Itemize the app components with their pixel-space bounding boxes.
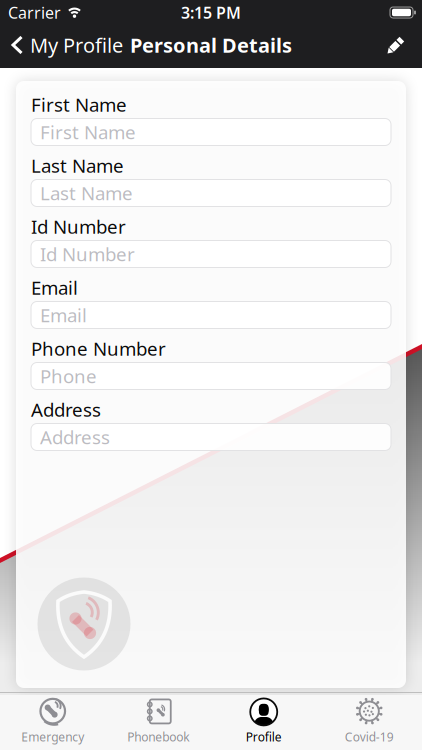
button[interactable]: Phonebook <box>105 698 211 745</box>
staticText: Profile <box>246 729 282 745</box>
button[interactable]: Id Number <box>31 240 391 267</box>
staticText: Id Number <box>40 242 135 266</box>
button[interactable]: Emergency <box>0 698 105 745</box>
staticText: Address <box>31 397 101 422</box>
staticText: Covid-19 <box>345 729 394 745</box>
staticText: Personal Details <box>130 32 292 58</box>
staticText: First Name <box>40 120 136 144</box>
button[interactable]: Phone Number <box>31 362 391 389</box>
staticText: First Name <box>31 92 127 117</box>
button[interactable]: Back <box>0 32 123 58</box>
button[interactable]: Covid-19 <box>316 698 422 745</box>
button[interactable]: Address <box>31 423 391 450</box>
staticText: Emergency <box>21 729 84 745</box>
button[interactable]: Edit <box>385 34 422 56</box>
staticText: Id Number <box>31 214 126 239</box>
staticText: 3:15 PM <box>181 2 241 23</box>
button[interactable]: Profile <box>211 698 316 745</box>
staticText: Last Name <box>40 181 133 205</box>
staticText: Email <box>31 275 78 300</box>
staticText: Phone Number <box>31 336 166 361</box>
button[interactable]: First Name <box>31 118 391 145</box>
staticText: Phone <box>40 364 97 388</box>
staticText: My Profile <box>30 32 123 58</box>
staticText: Address <box>40 425 110 449</box>
staticText: Last Name <box>31 153 124 178</box>
staticText: Email <box>40 303 87 327</box>
staticText: Carrier <box>8 2 61 23</box>
button[interactable]: Last Name <box>31 179 391 206</box>
button[interactable]: Email <box>31 301 391 328</box>
staticText: Phonebook <box>127 729 189 745</box>
